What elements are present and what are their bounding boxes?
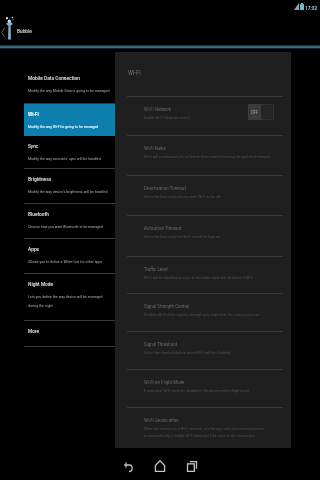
staticText: Bluetooth [28, 211, 49, 217]
button[interactable]: Brightness [0, 169, 115, 203]
staticText: Select for how long time Wi-Fi should be… [144, 234, 220, 239]
button[interactable]: Wi-Fi [24, 104, 115, 136]
staticText: Select the threshold below which Wi-Fi w… [144, 350, 230, 355]
button[interactable]: Recents [176, 450, 208, 480]
button[interactable]: Bluetooth [0, 204, 115, 238]
button[interactable]: More [0, 321, 115, 346]
staticText: Modify the way device's brightness will … [28, 189, 108, 194]
staticText: Wi-Fi Geolocation [144, 417, 179, 423]
staticText: Brightness [28, 176, 52, 182]
staticText: If activated, Wi-Fi won't be disabled if… [144, 388, 250, 393]
staticText: Modify the way Wi-Fi is going to be mana… [28, 124, 99, 129]
staticText: OFF [251, 110, 259, 115]
button[interactable]: Home [144, 450, 176, 480]
button[interactable]: Signal Strength Control [115, 294, 291, 331]
button[interactable]: Night Mode [0, 274, 115, 320]
staticText: Signal Strength Control [144, 303, 190, 309]
staticText: More [28, 328, 40, 334]
button[interactable]: Back [112, 450, 144, 480]
staticText: Mobile Data Connection [28, 75, 80, 81]
button[interactable]: Wi-Fi Rules [115, 136, 291, 175]
staticText: Choose how you want Bluetooth to be mana… [28, 224, 103, 229]
button[interactable]: Deactivation Timeout [115, 176, 291, 215]
staticText: Modify the way accounts' sync will be ha… [28, 156, 101, 161]
staticText: Night Mode [28, 281, 54, 287]
staticText: Allows you to define a White-List for ot… [28, 259, 103, 264]
button[interactable]: Wi-Fi on Flight Mode [115, 370, 291, 407]
button[interactable]: Sync [0, 136, 115, 168]
staticText: Wi-Fi will continuously be activated/dea… [144, 154, 271, 159]
staticText: Traffic Level [144, 266, 168, 272]
button[interactable]: Wi-Fi Network [115, 97, 291, 135]
staticText: Signal Threshold [144, 341, 177, 347]
staticText: Modify the way Mobile Data is going to b… [28, 88, 110, 93]
button[interactable]: Wi-Fi Geolocation [115, 408, 291, 448]
button[interactable]: Mobile Data Connection [0, 68, 115, 103]
staticText: Select for how long time you want Wi-Fi … [144, 194, 221, 199]
staticText: Apps [28, 246, 40, 252]
staticText: When you connect to a Wi-Fi network, let… [144, 426, 264, 438]
button[interactable]: Up, Bubble [0, 12, 320, 46]
staticText: Wi-Fi Network [144, 106, 172, 112]
staticText: Deactivation Timeout [144, 185, 186, 191]
staticText: Sync [28, 143, 39, 149]
staticText: Wi-Fi [128, 69, 141, 77]
staticText: Wi-Fi on Flight Mode [144, 379, 185, 385]
staticText: 17:32 [305, 5, 318, 11]
button[interactable]: Wi-Fi Network, off [248, 104, 274, 120]
button[interactable]: Traffic Level [115, 257, 291, 293]
staticText: Disables Wi-Fi if the signal's strength … [144, 312, 259, 317]
button[interactable]: Signal Threshold [115, 332, 291, 369]
staticText: Wi-Fi Rules [144, 145, 166, 151]
button[interactable]: Apps [0, 239, 115, 273]
staticText: Activation Timeout [144, 225, 182, 231]
staticText: Wi-Fi will be disabled as soon as the tr… [144, 275, 253, 280]
staticText: Lets you define the way device will be m… [28, 294, 103, 308]
staticText: Bubble [17, 28, 32, 34]
staticText: Wi-Fi [28, 111, 39, 117]
staticText: Enable Wi-Fi Network control [144, 115, 190, 120]
button[interactable]: Activation Timeout [115, 216, 291, 256]
